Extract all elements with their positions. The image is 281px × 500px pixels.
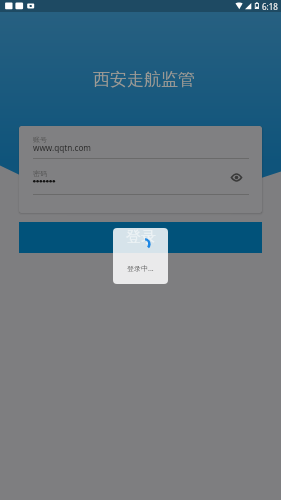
staticText: 账号	[33, 135, 47, 144]
button[interactable]: Toggle password visibility	[228, 169, 245, 186]
staticText: 6:18	[262, 1, 278, 12]
staticText: 登录中...	[127, 264, 154, 274]
staticText: 密码	[33, 169, 47, 178]
staticText: 登录	[126, 228, 156, 247]
button[interactable]: 登录	[19, 222, 262, 253]
staticText: www.qqtn.com	[33, 142, 91, 153]
staticText: 西安走航监管	[93, 69, 195, 90]
